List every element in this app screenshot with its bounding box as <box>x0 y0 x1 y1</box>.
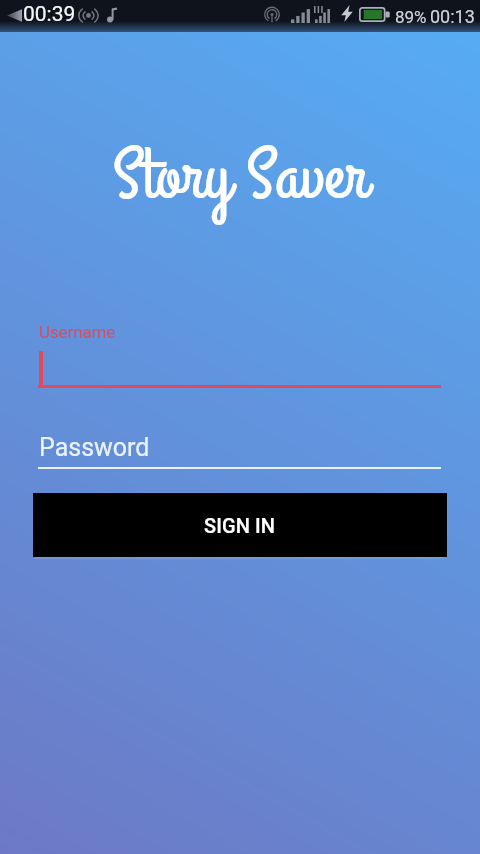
staticText: 00:13 <box>430 6 475 27</box>
button[interactable]: Username <box>33 316 447 390</box>
button[interactable]: SIGN IN <box>33 493 447 557</box>
staticText: 00:39 <box>23 2 76 27</box>
other: Back <box>7 9 22 22</box>
button[interactable]: Password <box>33 428 447 472</box>
staticText: Username <box>39 322 116 342</box>
other: Hotspot <box>264 7 280 23</box>
staticText: SIGN IN <box>204 514 276 537</box>
staticText: Password <box>39 433 150 462</box>
staticText: Story Saver <box>112 128 368 226</box>
staticText: 89% <box>395 7 427 27</box>
